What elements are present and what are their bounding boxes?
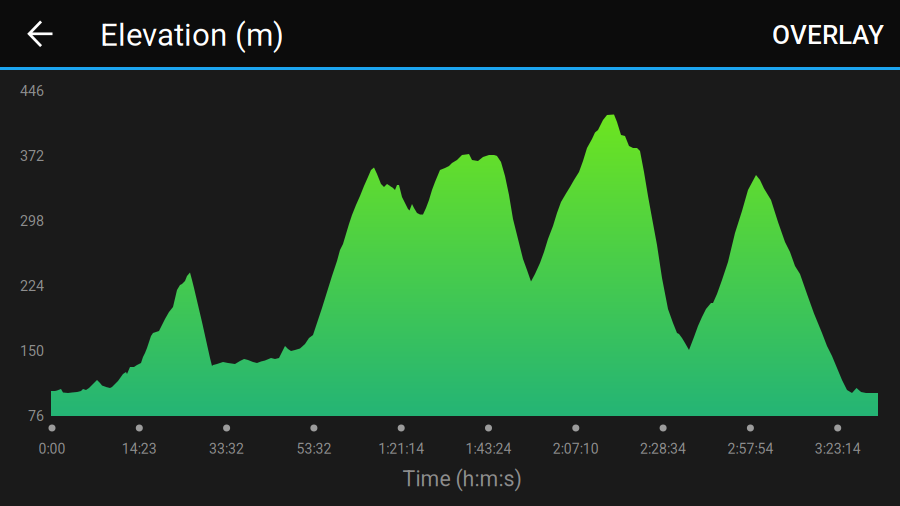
staticText: Time (h:m:s) bbox=[402, 466, 521, 491]
staticText: 150 bbox=[20, 343, 44, 359]
staticText: 76 bbox=[28, 408, 44, 424]
staticText: 298 bbox=[20, 213, 44, 229]
button[interactable]: OVERLAY bbox=[760, 6, 896, 64]
staticText: 1:21:14 bbox=[378, 441, 424, 457]
staticText: OVERLAY bbox=[772, 20, 884, 50]
staticText: 1:43:24 bbox=[465, 441, 511, 457]
staticText: 3:23:14 bbox=[815, 441, 861, 457]
staticText: 0:00 bbox=[38, 441, 65, 457]
button[interactable]: Back bbox=[12, 6, 68, 62]
staticText: Elevation (m) bbox=[100, 17, 284, 53]
staticText: 2:57:54 bbox=[727, 441, 773, 457]
staticText: 2:28:34 bbox=[640, 441, 686, 457]
staticText: 372 bbox=[20, 148, 44, 164]
staticText: 33:32 bbox=[209, 441, 244, 457]
staticText: 53:32 bbox=[296, 441, 331, 457]
staticText: 224 bbox=[20, 278, 44, 294]
staticText: 446 bbox=[20, 83, 44, 99]
staticText: 14:23 bbox=[122, 441, 157, 457]
staticText: 2:07:10 bbox=[553, 441, 599, 457]
